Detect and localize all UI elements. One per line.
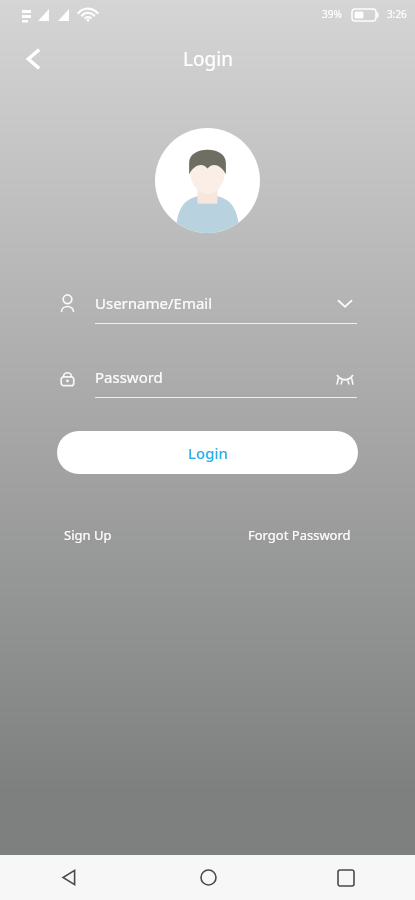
button[interactable]: Sign Up (64, 522, 112, 548)
button[interactable]: Show password (333, 365, 357, 389)
button[interactable]: Back (10, 35, 58, 83)
staticText: 3:26 (387, 7, 407, 21)
staticText: Login (183, 46, 233, 72)
staticText: Password (95, 367, 333, 387)
staticText: Sign Up (64, 526, 112, 544)
button[interactable]: Home (139, 855, 277, 900)
button[interactable]: Profile photo (155, 128, 260, 233)
button[interactable]: Password (58, 362, 357, 398)
button[interactable]: Forgot Password (248, 522, 351, 548)
staticText: Login (188, 443, 228, 463)
button[interactable]: Back (0, 855, 139, 900)
staticText: Username/Email (95, 293, 333, 313)
staticText: Forgot Password (248, 526, 351, 544)
button[interactable]: Username/Email (58, 288, 357, 324)
button[interactable]: Show suggestions (333, 291, 357, 315)
button[interactable]: Login (57, 431, 358, 474)
staticText: 39% (322, 7, 342, 21)
button[interactable]: Recent apps (277, 855, 415, 900)
